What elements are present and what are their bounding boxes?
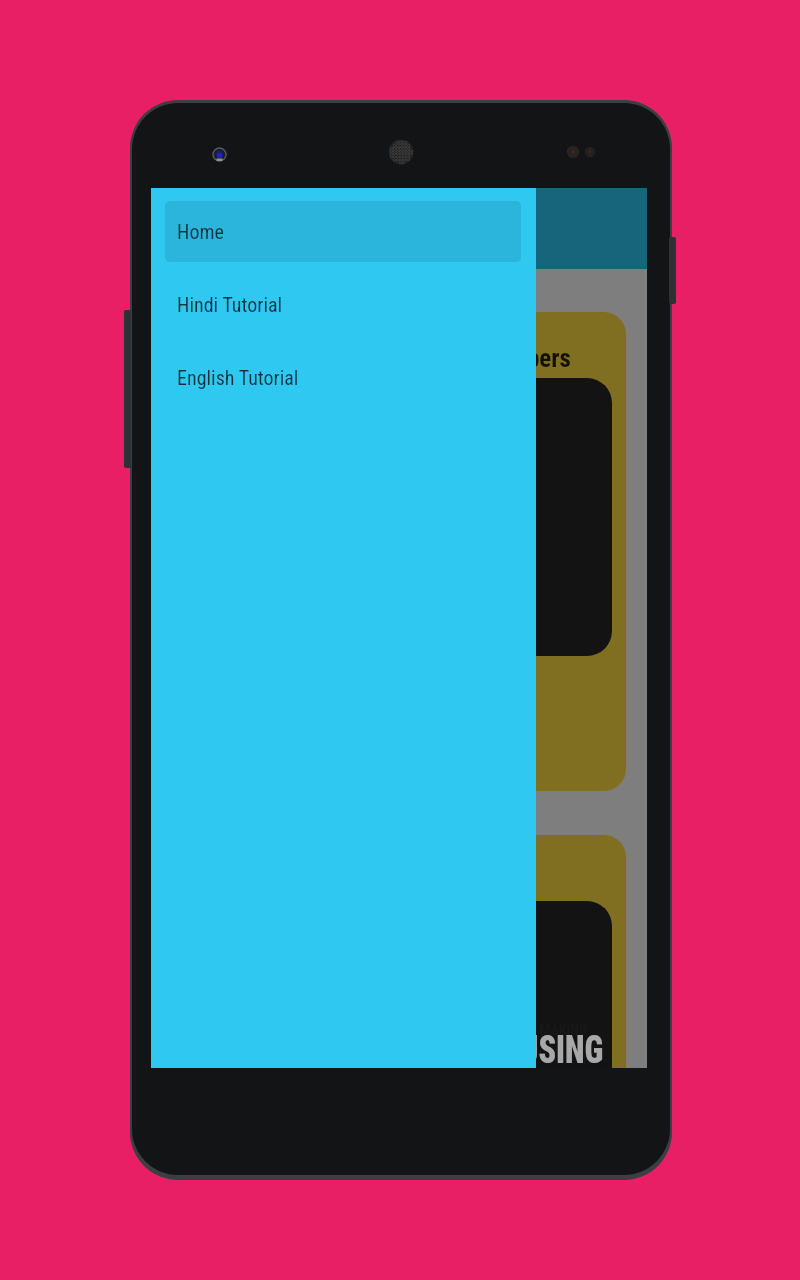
staticText: Home	[177, 220, 224, 243]
button[interactable]: Paper Craft Ideas	[172, 835, 626, 1068]
button[interactable]: Home	[165, 201, 521, 262]
button[interactable]: How To Make Wonderful Color Papers	[172, 312, 626, 791]
staticText: FLOWER MAKING	[490, 1022, 588, 1038]
button[interactable]: Hindi Tutorial	[151, 268, 536, 341]
staticText: English Tutorial	[177, 366, 299, 389]
button[interactable]: English Tutorial	[151, 341, 536, 414]
staticText: USING	[520, 1026, 604, 1068]
button[interactable]: Open navigation drawer	[167, 206, 213, 252]
staticText: Hindi Tutorial	[177, 293, 283, 316]
staticText: How To Make Wonderful Color Papers	[195, 344, 571, 373]
